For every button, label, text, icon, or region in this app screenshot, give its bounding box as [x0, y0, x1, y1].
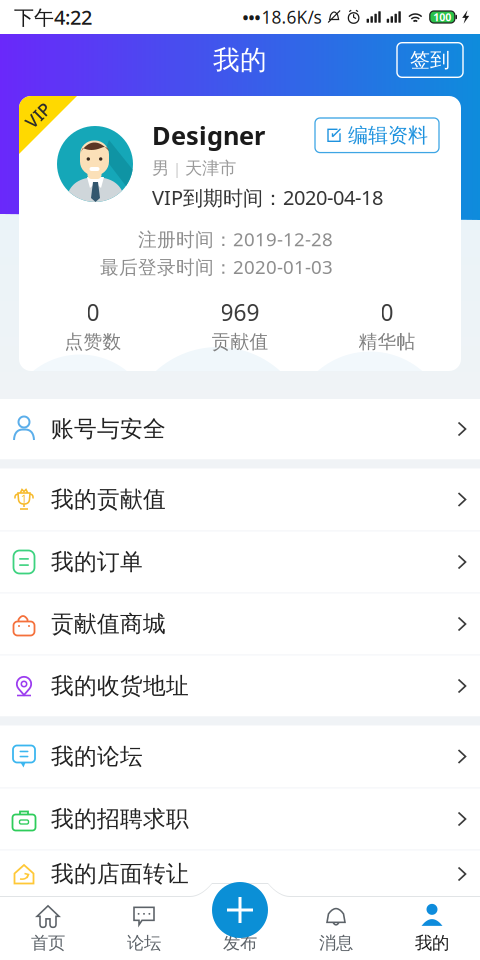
staticText: 点赞数 — [64, 330, 121, 353]
staticText: 编辑资料 — [348, 123, 428, 148]
staticText: 论坛 — [127, 932, 161, 954]
button[interactable]: 签到 — [397, 43, 463, 77]
button[interactable]: 我的收货地址 — [0, 655, 480, 716]
staticText: 我的收货地址 — [51, 672, 189, 700]
staticText: 我的贡献值 — [51, 486, 166, 513]
staticText: 1 — [21, 491, 27, 506]
staticText: 我的 — [213, 44, 267, 76]
staticText: 贡献值商城 — [51, 610, 166, 638]
button[interactable]: 我的 — [384, 897, 480, 960]
button[interactable]: 我的招聘求职 — [0, 788, 480, 849]
staticText: 发布 — [223, 932, 257, 954]
staticText: 我的 — [415, 932, 449, 954]
staticText: VIP到期时间：2020-04-18 — [152, 184, 383, 211]
staticText: 下午4:22 — [14, 4, 92, 30]
staticText: 签到 — [410, 48, 450, 72]
staticText: 18.6K/s — [262, 5, 322, 28]
button[interactable]: 我的店面转让 — [0, 850, 480, 897]
staticText: 注册时间：2019-12-28 — [138, 226, 333, 251]
staticText: 100 — [433, 10, 451, 24]
staticText: 0 — [380, 297, 393, 327]
staticText: 969 — [220, 297, 259, 327]
staticText: 消息 — [319, 932, 353, 954]
staticText: 我的店面转让 — [51, 860, 189, 888]
button[interactable]: 账号与安全 — [0, 398, 480, 459]
button[interactable]: 我的论坛 — [0, 725, 480, 787]
button[interactable]: 编辑资料 — [315, 118, 439, 153]
button[interactable]: 1 — [0, 468, 480, 530]
staticText: VIP — [24, 103, 52, 126]
button[interactable]: 首页 — [0, 897, 96, 960]
staticText: 贡献值 — [211, 330, 268, 353]
button[interactable]: 消息 — [288, 897, 384, 960]
staticText: Designer — [152, 118, 265, 152]
staticText: 我的论坛 — [51, 743, 143, 770]
button[interactable]: 发布 — [192, 897, 288, 960]
staticText: 账号与安全 — [51, 415, 166, 443]
staticText: 天津市 — [185, 158, 236, 179]
staticText: 0 — [86, 297, 99, 327]
button[interactable]: 贡献值商城 — [0, 593, 480, 654]
staticText: 精华帖 — [358, 330, 415, 353]
staticText: 首页 — [31, 932, 65, 954]
staticText: ••• — [243, 6, 261, 28]
staticText: 男 — [152, 158, 169, 179]
staticText: 我的订单 — [51, 548, 143, 576]
staticText: 最后登录时间：2020-01-03 — [100, 254, 333, 279]
button[interactable]: 发布 — [212, 882, 268, 938]
button[interactable]: 我的订单 — [0, 531, 480, 592]
staticText: 我的招聘求职 — [51, 805, 189, 833]
staticText: | — [169, 158, 185, 178]
button[interactable]: 论坛 — [96, 897, 192, 960]
